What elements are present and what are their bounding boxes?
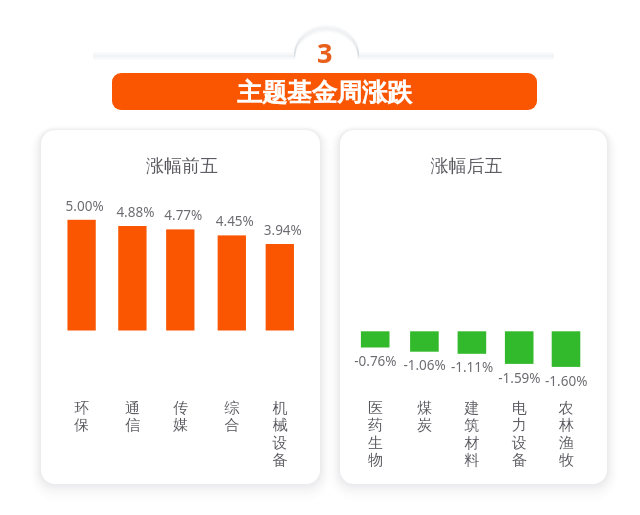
button[interactable] [0, 0, 640, 515]
